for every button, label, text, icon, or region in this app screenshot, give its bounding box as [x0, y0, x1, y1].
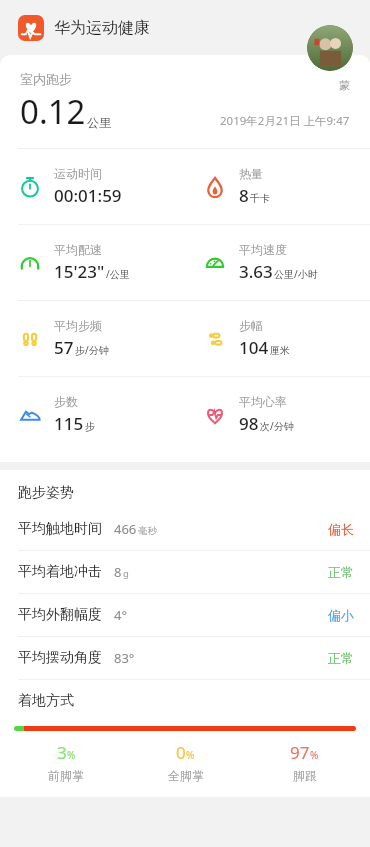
staticText: 2019年2月21日 上午9:47: [220, 113, 350, 129]
staticText: 全脚掌: [168, 768, 204, 783]
staticText: 平均摆动角度: [18, 649, 102, 667]
button[interactable]: 0: [126, 741, 245, 783]
staticText: 厘米: [270, 344, 290, 357]
button[interactable]: 步幅: [185, 301, 370, 376]
staticText: 步数: [54, 394, 78, 409]
button[interactable]: 平均速度: [185, 225, 370, 300]
button[interactable]: 华为运动健康: [18, 15, 150, 41]
staticText: 华为运动健康: [54, 18, 150, 38]
staticText: 98: [239, 412, 259, 435]
staticText: /公里: [106, 267, 130, 281]
button[interactable]: 平均外翻幅度: [0, 594, 370, 636]
staticText: 115: [54, 412, 84, 435]
staticText: 正常: [328, 650, 354, 666]
staticText: 466: [114, 520, 137, 538]
staticText: 室内跑步: [20, 71, 72, 87]
staticText: 97: [290, 741, 310, 764]
staticText: 平均触地时间: [18, 520, 102, 538]
staticText: 偏长: [328, 521, 354, 537]
button[interactable]: 平均摆动角度: [0, 637, 370, 679]
staticText: 83°: [114, 649, 135, 667]
button[interactable]: Profile: [307, 25, 353, 71]
staticText: 脚跟: [293, 768, 317, 783]
staticText: 步/分钟: [75, 343, 109, 357]
button[interactable]: 平均触地时间: [0, 508, 370, 550]
staticText: 00:01:59: [54, 184, 122, 207]
staticText: %: [186, 748, 195, 762]
staticText: 104: [239, 336, 269, 359]
button[interactable]: 平均配速: [0, 225, 185, 300]
staticText: 15'23": [54, 260, 105, 283]
staticText: 3: [57, 741, 67, 764]
staticText: 步: [85, 420, 95, 433]
staticText: 千卡: [250, 192, 270, 205]
staticText: 着地方式: [18, 692, 74, 710]
button[interactable]: 运动时间: [0, 149, 185, 224]
button[interactable]: 97: [245, 741, 364, 783]
staticText: 次/分钟: [260, 419, 294, 433]
staticText: 0: [176, 741, 186, 764]
staticText: 正常: [328, 564, 354, 580]
staticText: 4°: [114, 606, 128, 624]
staticText: %: [67, 748, 76, 762]
staticText: 8: [239, 184, 249, 207]
staticText: 公里: [87, 115, 111, 130]
button[interactable]: 平均步频: [0, 301, 185, 376]
staticText: 8: [114, 563, 122, 581]
staticText: 公里/小时: [274, 267, 318, 281]
staticText: 平均速度: [239, 242, 287, 257]
button[interactable]: 平均着地冲击: [0, 551, 370, 593]
staticText: %: [310, 748, 319, 762]
staticText: g: [123, 567, 129, 580]
staticText: 平均配速: [54, 242, 102, 257]
staticText: 平均外翻幅度: [18, 606, 102, 624]
staticText: 57: [54, 336, 74, 359]
staticText: 平均步频: [54, 318, 102, 333]
button[interactable]: 平均心率: [185, 377, 370, 452]
staticText: 运动时间: [54, 166, 102, 181]
staticText: 跑步姿势: [18, 484, 74, 502]
staticText: 前脚掌: [48, 768, 84, 783]
staticText: 热量: [239, 166, 263, 181]
staticText: 平均着地冲击: [18, 563, 102, 581]
staticText: 平均心率: [239, 394, 287, 409]
staticText: 0.12: [20, 89, 86, 134]
button[interactable]: 3: [6, 741, 126, 783]
staticText: 蒙: [339, 78, 350, 92]
button[interactable]: 步数: [0, 377, 185, 452]
button[interactable]: 热量: [185, 149, 370, 224]
staticText: 步幅: [239, 318, 263, 333]
staticText: 毫秒: [138, 525, 157, 537]
staticText: 3.63: [239, 260, 273, 283]
staticText: 偏小: [328, 607, 354, 623]
